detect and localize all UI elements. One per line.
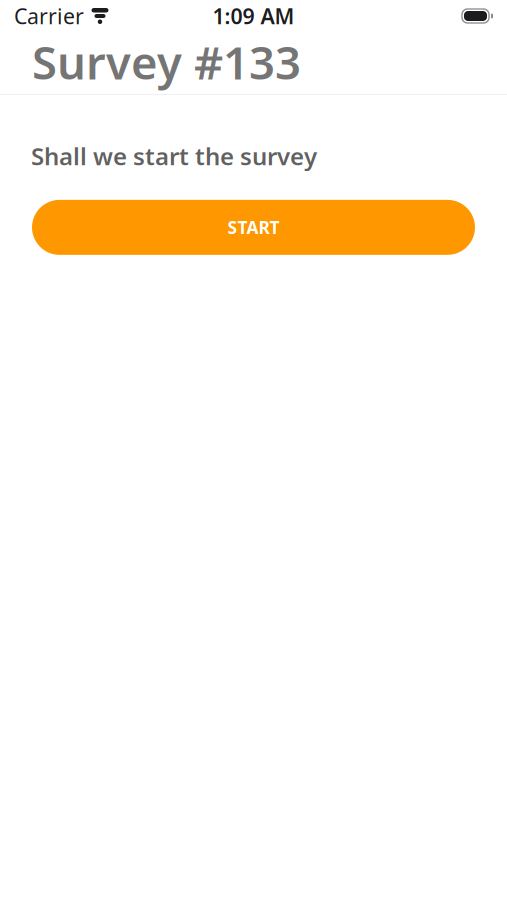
button[interactable]: START [32, 200, 475, 255]
staticText: START [227, 216, 279, 239]
staticText: Shall we start the survey [31, 140, 317, 172]
staticText: Carrier [14, 2, 84, 30]
staticText: 1:09 AM [212, 2, 294, 30]
staticText: Survey #133 [32, 32, 301, 92]
